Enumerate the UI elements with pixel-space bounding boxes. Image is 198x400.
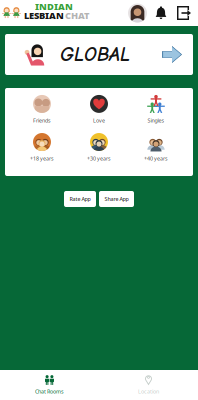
button[interactable]: Love [70,95,127,124]
button[interactable]: Singles [127,95,184,124]
button[interactable]: Share App [99,191,134,207]
button[interactable]: +40 years [127,133,184,162]
staticText: CHAT [65,9,90,22]
staticText: +30 years [87,155,111,162]
button[interactable]: Rate App [64,191,96,207]
staticText: INDIAN [35,0,73,13]
staticText: Rate App [69,195,90,203]
staticText: +40 years [144,155,168,162]
button[interactable]: Log out [173,0,195,26]
staticText: +18 years [30,155,54,162]
staticText: Chat Rooms [35,388,64,395]
button[interactable]: Notifications [149,0,173,26]
staticText: Singles [147,117,164,124]
button[interactable]: GLOBAL [5,34,193,75]
staticText: Love [93,117,105,124]
button[interactable]: Chat Rooms [0,370,99,400]
button[interactable]: +18 years [13,133,70,162]
staticText: LESBIAN [24,9,64,22]
staticText: GLOBAL [60,43,130,66]
staticText: Friends [33,117,51,124]
staticText: Share App [104,195,128,203]
button[interactable]: +30 years [70,133,127,162]
staticText: Location [138,388,159,395]
button[interactable]: Friends [13,95,70,124]
button[interactable]: Location [99,370,198,400]
button[interactable]: Profile [126,0,149,26]
